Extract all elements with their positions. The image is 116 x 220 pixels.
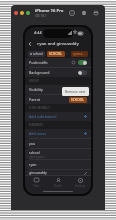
staticText: Visibility [29, 87, 70, 92]
button[interactable]: Remove user [62, 87, 89, 96]
staticText: SCHOOL [71, 98, 85, 102]
staticText: Secret [75, 88, 85, 92]
staticText: › [67, 51, 69, 56]
button[interactable]: Edit [83, 171, 87, 175]
button[interactable]: Background [25, 68, 91, 77]
staticText: Profile [54, 184, 62, 188]
button[interactable]: ginsuwddy [25, 170, 91, 175]
button[interactable]: Close [14, 11, 18, 15]
button[interactable]: you [25, 139, 91, 148]
button[interactable]: Chat [25, 176, 47, 189]
button[interactable]: school [25, 149, 91, 159]
button[interactable]: Maximize [26, 11, 30, 15]
staticText: MEMBERS [29, 123, 43, 127]
staticText: Chat [33, 184, 39, 188]
button[interactable]: SCHOOL [47, 51, 65, 57]
button[interactable]: Add subchannel [25, 112, 91, 121]
staticText: participants [29, 155, 45, 159]
staticText: ryan and ginsuwddy [73, 52, 86, 56]
button[interactable]: school [28, 51, 45, 57]
button[interactable]: Screenshot [80, 9, 88, 17]
staticText: you [29, 141, 36, 146]
button[interactable]: Rotate [92, 9, 100, 17]
staticText: Background [29, 70, 78, 75]
staticText: ginsuwddy [29, 170, 47, 175]
button[interactable]: Profile [47, 176, 69, 189]
staticText: Remove user [65, 89, 86, 94]
staticText: ryan [29, 162, 37, 167]
staticText: school [33, 52, 43, 56]
staticText: school [29, 150, 40, 155]
button[interactable]: Minimize [20, 11, 24, 15]
staticText: GROUP [29, 79, 40, 83]
staticText: iPhone 16 Pro [35, 8, 64, 14]
button[interactable]: Home [68, 9, 76, 17]
button[interactable]: Pushnotific [25, 58, 91, 67]
staticText: iOS 18.1 [35, 14, 47, 18]
staticText: Settings [75, 184, 85, 188]
button[interactable]: ryan and ginsuwddy [71, 51, 88, 57]
staticText: SUBCHANNELS [29, 106, 50, 110]
button[interactable]: Parent [25, 95, 91, 104]
button[interactable]: Back [25, 39, 34, 48]
staticText: Pushnotific [29, 60, 72, 65]
button[interactable]: Add users [25, 129, 91, 138]
button[interactable]: ryan [25, 160, 91, 169]
staticText: Add users [29, 131, 84, 136]
staticText: ryan and ginsuwddy [37, 41, 79, 47]
staticText: 4:44 [34, 30, 42, 35]
button[interactable]: Visibility [25, 85, 91, 94]
staticText: Parent [29, 97, 69, 102]
button[interactable]: Settings [69, 176, 91, 189]
staticText: Add subchannel [29, 114, 84, 119]
staticText: SCHOOL [49, 52, 63, 56]
